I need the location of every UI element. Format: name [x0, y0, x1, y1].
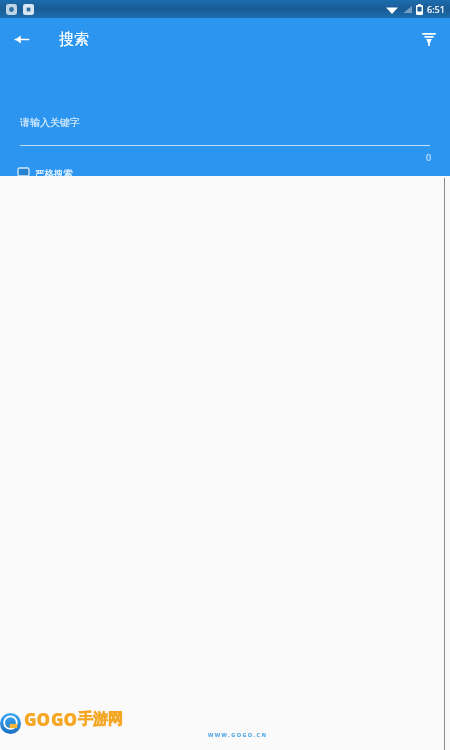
staticText: 搜索 [59, 30, 89, 49]
button[interactable]: 严格搜索 [18, 168, 73, 176]
button[interactable]: Filter [408, 18, 450, 60]
staticText: 6:51 [427, 3, 445, 15]
staticText: 严格搜索 [35, 168, 73, 176]
button[interactable]: Back [0, 18, 42, 60]
button[interactable]: 请输入关键字 [20, 116, 430, 146]
staticText: GO [51, 708, 78, 731]
staticText: 0 [426, 151, 432, 163]
staticText: W W W . G O G O . C N [24, 731, 450, 738]
staticText: GO [24, 708, 51, 731]
staticText: 手游网 [78, 710, 123, 729]
staticText: 请输入关键字 [20, 116, 80, 129]
